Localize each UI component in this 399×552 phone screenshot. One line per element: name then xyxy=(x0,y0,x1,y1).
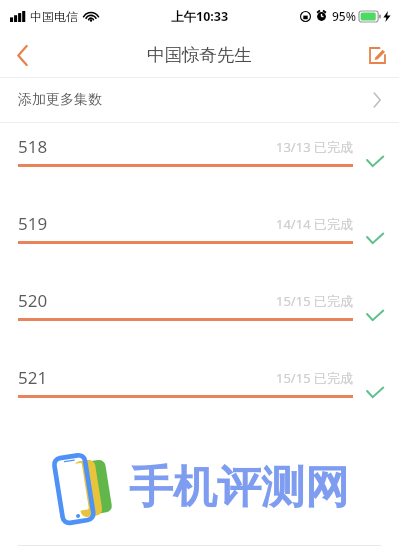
staticText: 手机评测网 xyxy=(129,460,349,515)
button[interactable]: 添加更多集数 xyxy=(0,78,399,122)
staticText: 519 xyxy=(18,212,48,235)
staticText: 添加更多集数 xyxy=(18,91,102,109)
staticText: 上午10:33 xyxy=(171,8,229,25)
button[interactable]: 518 xyxy=(0,123,399,200)
staticText: 13/13 已完成 xyxy=(276,138,353,156)
button[interactable]: Edit xyxy=(355,33,399,77)
staticText: 14/14 已完成 xyxy=(276,215,353,233)
staticText: 中国电信 xyxy=(30,9,78,24)
staticText: 95% xyxy=(332,8,356,24)
button[interactable]: 519 xyxy=(0,200,399,277)
staticText: 520 xyxy=(18,289,48,312)
button[interactable]: 520 xyxy=(0,277,399,354)
staticText: 15/15 已完成 xyxy=(276,369,353,387)
staticText: 中国惊奇先生 xyxy=(147,44,252,66)
button[interactable]: Back xyxy=(0,33,44,77)
button[interactable]: 521 xyxy=(0,354,399,431)
staticText: 518 xyxy=(18,135,48,158)
staticText: 521 xyxy=(18,366,48,389)
staticText: 15/15 已完成 xyxy=(276,292,353,310)
